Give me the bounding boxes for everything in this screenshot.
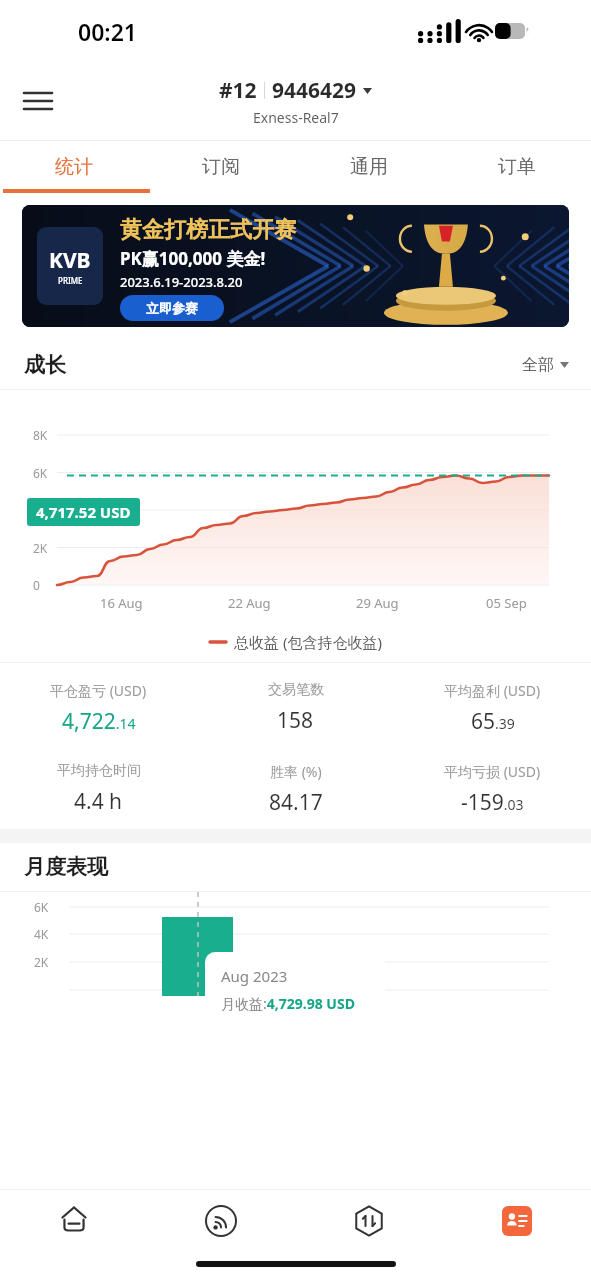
staticText: 158 <box>277 706 314 735</box>
staticText: 0 <box>33 577 40 593</box>
button[interactable]: 平均持仓时间 <box>0 762 197 816</box>
staticText: 4,722.14 <box>62 707 136 736</box>
staticText: KVB <box>49 246 91 275</box>
button[interactable]: #12 <box>219 76 372 127</box>
staticText: 2023.6.19-2023.8.20 <box>120 273 243 291</box>
staticText: 05 Sep <box>486 594 527 612</box>
staticText: #12 <box>219 76 257 105</box>
staticText: 22 Aug <box>228 594 271 612</box>
staticText: 65.39 <box>471 707 515 736</box>
staticText: 16 Aug <box>100 594 143 612</box>
staticText: Aug 2023 <box>221 966 288 986</box>
staticText: 胜率 (%) <box>270 762 322 781</box>
staticText: 9446429 <box>272 76 357 105</box>
staticText: 4K <box>34 926 49 942</box>
staticText: 84.17 <box>269 788 323 817</box>
staticText: 订单 <box>498 155 536 179</box>
button[interactable]: 平仓盈亏 (USD) <box>0 681 197 736</box>
button[interactable]: 订单 <box>443 141 591 193</box>
staticText: Exness-Real7 <box>253 108 339 127</box>
staticText: 6K <box>33 465 48 481</box>
staticText: 平均亏损 (USD) <box>444 762 541 781</box>
button[interactable]: Profile <box>443 1190 591 1252</box>
button[interactable]: 通用 <box>295 141 443 193</box>
staticText: 成长 <box>24 352 66 378</box>
staticText: 4,717.52 USD <box>36 502 131 522</box>
staticText: 47 <box>526 22 541 40</box>
staticText: 6K <box>34 899 49 915</box>
staticText: 月收益:4,729.98 USD <box>221 994 355 1013</box>
staticText: 平均持仓时间 <box>57 762 141 780</box>
button[interactable]: Menu <box>14 77 62 125</box>
button[interactable]: 全部 <box>522 355 569 375</box>
staticText: 统计 <box>55 155 93 179</box>
button[interactable]: Trade <box>295 1190 443 1252</box>
staticText: 2K <box>34 954 49 970</box>
button[interactable]: Home <box>0 1190 147 1252</box>
staticText: 交易笔数 <box>268 681 324 699</box>
button[interactable]: 胜率 (%) <box>197 762 394 817</box>
staticText: 平仓盈亏 (USD) <box>50 681 147 700</box>
button[interactable]: 平均亏损 (USD) <box>394 762 591 817</box>
staticText: 立即参赛 <box>146 300 198 316</box>
button[interactable]: 立即参赛 <box>120 295 224 321</box>
staticText: PK赢100,000 美金! <box>120 247 266 270</box>
staticText: 平均盈利 (USD) <box>444 681 541 700</box>
button[interactable]: 订阅 <box>147 141 295 193</box>
staticText: PRIME <box>58 275 83 286</box>
staticText: 通用 <box>350 155 388 179</box>
button[interactable]: 交易笔数 <box>197 681 394 735</box>
staticText: 8K <box>33 427 48 443</box>
staticText: -159.03 <box>461 788 524 817</box>
staticText: 00:21 <box>78 16 137 47</box>
button[interactable]: 统计 <box>0 141 147 193</box>
staticText: 总收益 (包含持仓收益) <box>234 632 382 652</box>
staticText: 4.4 h <box>74 787 123 816</box>
button[interactable]: Signals <box>147 1190 295 1252</box>
staticText: 29 Aug <box>356 594 399 612</box>
staticText: 黄金打榜正式开赛 <box>120 216 296 244</box>
staticText: 月度表现 <box>24 854 108 880</box>
button[interactable]: 平均盈利 (USD) <box>394 681 591 736</box>
staticText: 订阅 <box>202 155 240 179</box>
staticText: 全部 <box>522 355 554 375</box>
button[interactable]: KVB <box>22 205 569 327</box>
staticText: 4K <box>33 502 48 518</box>
staticText: 2K <box>33 540 48 556</box>
